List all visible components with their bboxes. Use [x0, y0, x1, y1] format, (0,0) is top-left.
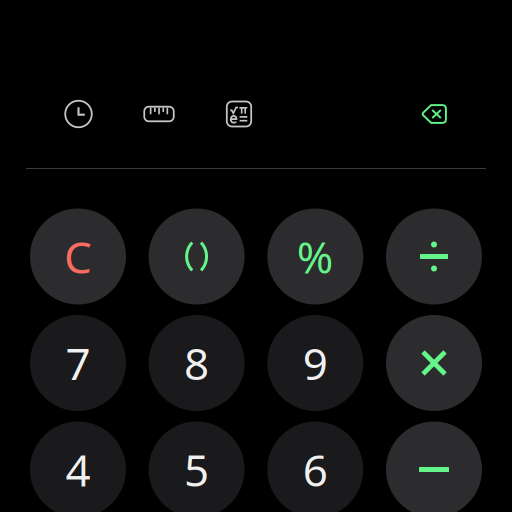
staticText: 7 [65, 334, 90, 392]
button[interactable]: % [267, 208, 363, 304]
button[interactable]: 9 [267, 315, 363, 411]
button[interactable]: Multiply [386, 315, 482, 411]
button[interactable]: Divide [386, 208, 482, 304]
staticText: % [297, 227, 334, 286]
button[interactable]: 5 [149, 421, 245, 512]
button[interactable]: 6 [267, 421, 363, 512]
button[interactable]: Delete [421, 104, 447, 124]
button[interactable]: C [30, 208, 126, 304]
staticText: 5 [184, 440, 209, 499]
button[interactable]: 4 [30, 421, 126, 512]
button[interactable]: Parentheses [149, 208, 245, 304]
button[interactable]: 8 [149, 315, 245, 411]
staticText: 4 [65, 440, 90, 499]
button[interactable]: Unit converter [144, 107, 174, 121]
button[interactable]: 7 [30, 315, 126, 411]
button[interactable]: Scientific functions [227, 101, 251, 126]
button[interactable]: Minus [386, 421, 482, 512]
staticText: 8 [184, 334, 209, 392]
staticText: 6 [303, 440, 328, 499]
staticText: 9 [303, 334, 328, 392]
button[interactable]: History [65, 101, 92, 127]
staticText: C [64, 227, 92, 286]
